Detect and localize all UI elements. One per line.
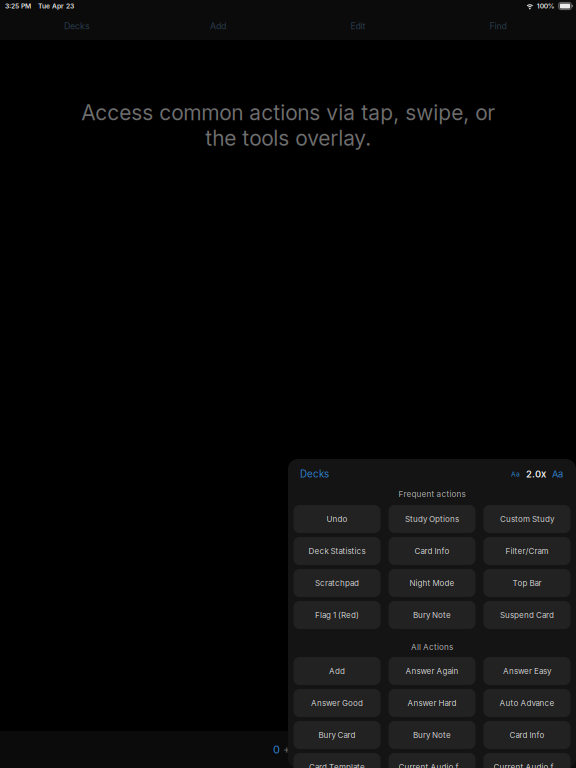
staticText: Card Template — [309, 762, 365, 768]
button[interactable]: Add — [293, 657, 380, 685]
staticText: Answer Good — [311, 698, 363, 708]
staticText: Answer Easy — [503, 666, 551, 676]
staticText: Edit — [350, 21, 365, 31]
button[interactable]: Current Audio f… — [483, 753, 570, 768]
staticText: + — [280, 743, 293, 756]
staticText: Bury Card — [318, 730, 355, 740]
staticText: Undo — [326, 514, 347, 524]
staticText: Scratchpad — [315, 578, 359, 588]
button[interactable]: Night Mode — [388, 569, 475, 597]
staticText: 3:25 PM — [5, 2, 31, 10]
button[interactable]: Study Options — [388, 505, 475, 533]
staticText: Find — [489, 21, 506, 31]
button[interactable]: Undo — [293, 505, 380, 533]
staticText: Add — [210, 21, 226, 31]
staticText: Current Audio f… — [493, 762, 560, 768]
button[interactable]: Custom Study — [483, 505, 570, 533]
button[interactable]: Bury Note — [388, 721, 475, 749]
button[interactable]: Scratchpad — [293, 569, 380, 597]
button[interactable]: Answer Good — [293, 689, 380, 717]
button[interactable]: Decks — [47, 12, 107, 40]
staticText: Aa — [511, 470, 520, 478]
button[interactable]: Decks — [300, 468, 329, 480]
button[interactable]: Answer Hard — [388, 689, 475, 717]
staticText: Answer Again — [405, 666, 458, 676]
staticText: Flag 1 (Red) — [315, 610, 359, 620]
button[interactable]: Filter/Cram — [483, 537, 570, 565]
button[interactable]: Current Audio f… — [388, 753, 475, 768]
button[interactable]: Suspend Card — [483, 601, 570, 629]
staticText: Bury Note — [413, 610, 451, 620]
staticText: Tue Apr 23 — [38, 2, 74, 10]
button[interactable]: Card Info — [483, 721, 570, 749]
staticText: Top Bar — [512, 578, 541, 588]
button[interactable]: Answer Again — [388, 657, 475, 685]
button[interactable]: Bury Note — [388, 601, 475, 629]
staticText: 100% — [537, 2, 555, 10]
staticText: Current Audio f… — [398, 762, 465, 768]
button[interactable]: Auto Advance — [483, 689, 570, 717]
staticText: Bury Note — [413, 730, 451, 740]
button[interactable]: Edit — [328, 12, 388, 40]
staticText: 5 — [293, 743, 300, 756]
button[interactable]: Add — [188, 12, 248, 40]
button[interactable]: Answer Easy — [483, 657, 570, 685]
staticText: Deck Statistics — [308, 546, 365, 556]
staticText: 2.0x — [526, 468, 546, 480]
button[interactable]: Card Template — [293, 753, 380, 768]
button[interactable]: Aa — [546, 468, 563, 480]
button[interactable]: Deck Statistics — [293, 537, 380, 565]
button[interactable]: Find — [468, 12, 528, 40]
staticText: Study Options — [405, 514, 459, 524]
button[interactable]: Aa — [511, 470, 520, 478]
staticText: Auto Advance — [499, 698, 554, 708]
staticText: All Actions — [411, 642, 453, 652]
staticText: Decks — [300, 468, 329, 480]
staticText: Night Mode — [409, 578, 454, 588]
staticText: Aa — [552, 468, 563, 480]
staticText: Custom Study — [500, 514, 554, 524]
button[interactable]: Top Bar — [483, 569, 570, 597]
button[interactable]: Flag 1 (Red) — [293, 601, 380, 629]
staticText: Answer Hard — [407, 698, 456, 708]
staticText: Frequent actions — [398, 489, 465, 499]
button[interactable]: Card Info — [388, 537, 475, 565]
button[interactable]: Bury Card — [293, 721, 380, 749]
staticText: Access common actions via tap, swipe, or… — [81, 100, 495, 151]
staticText: Card Info — [509, 730, 544, 740]
staticText: Suspend Card — [500, 610, 554, 620]
staticText: 0 — [273, 743, 280, 756]
staticText: Filter/Cram — [505, 546, 548, 556]
staticText: Card Info — [414, 546, 449, 556]
staticText: Decks — [64, 21, 90, 31]
staticText: Add — [329, 666, 345, 676]
